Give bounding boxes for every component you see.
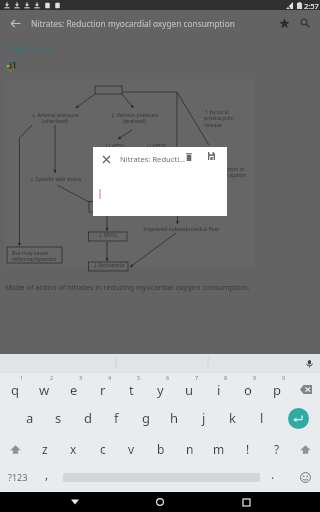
button[interactable]: Shift [291,433,320,463]
button[interactable]: g [131,403,160,433]
staticText: v [128,441,135,457]
button[interactable]: 7 [175,373,204,403]
button[interactable]: c [88,433,117,463]
button[interactable]: Save [202,147,220,165]
button[interactable]: m [204,433,233,463]
staticText: 8 [224,374,228,381]
staticText: f [114,409,119,427]
staticText: s [55,409,62,427]
staticText: e [70,381,78,399]
staticText: 3 [79,374,83,381]
button[interactable]: ? [262,433,291,463]
staticText: r [100,381,106,399]
button[interactable]: 3 [59,373,88,403]
staticText: l [260,409,264,427]
staticText: 5 [137,374,141,381]
button[interactable]: 0 [262,373,291,403]
staticText: ↓LVEDP [141,142,170,149]
staticText: b [157,441,165,457]
button[interactable]: 5 [117,373,146,403]
button[interactable]: 2 [30,373,59,403]
button[interactable]: Back [6,14,24,32]
staticText: 9 [253,374,257,381]
button[interactable]: Backspace [291,373,320,403]
button[interactable]: z [30,433,59,463]
button[interactable]: l [247,403,276,433]
button[interactable]: ?123 [2,463,34,491]
staticText: 0 [282,374,286,381]
staticText: Mode of action of nitrates in reducing m… [5,282,250,292]
staticText: ↑ by local prostacyclin release [204,108,238,129]
staticText: Nitrates: Reducti… [120,154,186,164]
button[interactable]: h [160,403,189,433]
staticText: p [273,381,281,399]
staticText: m [213,441,225,457]
button[interactable]: Voice input [304,358,315,369]
staticText: Improved subendocardial flow [139,225,223,232]
staticText: ↓ MVO₂ [92,231,124,238]
button[interactable]: b [146,433,175,463]
staticText: ↓ Ischaemia [92,261,125,268]
button[interactable]: 9 [233,373,262,403]
staticText: ↓ Reduction in coronary spasm [198,165,254,179]
staticText: But may cause reflex tachycardia [12,249,60,263]
staticText: y [157,381,164,399]
button[interactable]: a [15,403,44,433]
button[interactable]: Favourite [274,13,294,33]
staticText: n [186,441,194,457]
staticText: 6 [166,374,170,381]
staticText: w [39,381,50,399]
button[interactable]: , [36,463,58,491]
staticText: z [42,441,48,457]
staticText: ↓ Systolic wall stress [27,175,84,182]
staticText: ↓ Venous pressure (preload) [107,111,162,125]
staticText: , [45,466,49,482]
staticText: a [26,409,34,427]
staticText: ? [274,441,280,457]
button[interactable]: ! [233,433,262,463]
button[interactable]: . [262,463,284,491]
button[interactable]: x [59,433,88,463]
button[interactable]: Close [97,150,115,168]
button[interactable]: Recent apps [235,492,257,512]
staticText: g [142,409,150,427]
staticText: . [271,466,275,482]
button[interactable]: j [189,403,218,433]
button[interactable]: Search [295,13,315,33]
button[interactable]: k [218,403,247,433]
staticText: x [70,441,77,457]
button[interactable]: n [175,433,204,463]
staticText: j [202,409,206,427]
staticText: ?123 [8,471,28,483]
staticText: 7 [195,374,199,381]
button[interactable]: v [117,433,146,463]
staticText: 2 [50,374,54,381]
button[interactable]: Shift [0,433,30,463]
staticText: ↓LVEDV [101,142,128,149]
staticText: ! [246,441,250,457]
staticText: d [84,409,92,427]
button[interactable]: Back [64,492,86,512]
staticText: 1 [20,374,24,381]
button[interactable]: Enter [288,408,309,429]
staticText: 2:57 [304,1,319,11]
button[interactable]: Delete [180,147,198,165]
button[interactable]: 8 [204,373,233,403]
button[interactable]: 4 [88,373,117,403]
button[interactable]: Home [149,492,171,512]
staticText: i [217,381,221,399]
button[interactable]: f [102,403,131,433]
staticText: ↓ Arterial pressure (afterload) [27,111,83,125]
staticText: Figure 5-5 [7,43,54,55]
staticText: o [244,381,252,399]
staticText: q [11,381,19,399]
button[interactable]: Emoji [292,463,318,491]
staticText: t [129,381,134,399]
staticText: u [185,381,194,399]
button[interactable]: d [73,403,102,433]
staticText: Nitrates: Reduction myocardial oxygen co… [31,18,235,29]
button[interactable]: 1 [0,373,30,403]
button[interactable]: s [44,403,73,433]
button[interactable]: 6 [146,373,175,403]
